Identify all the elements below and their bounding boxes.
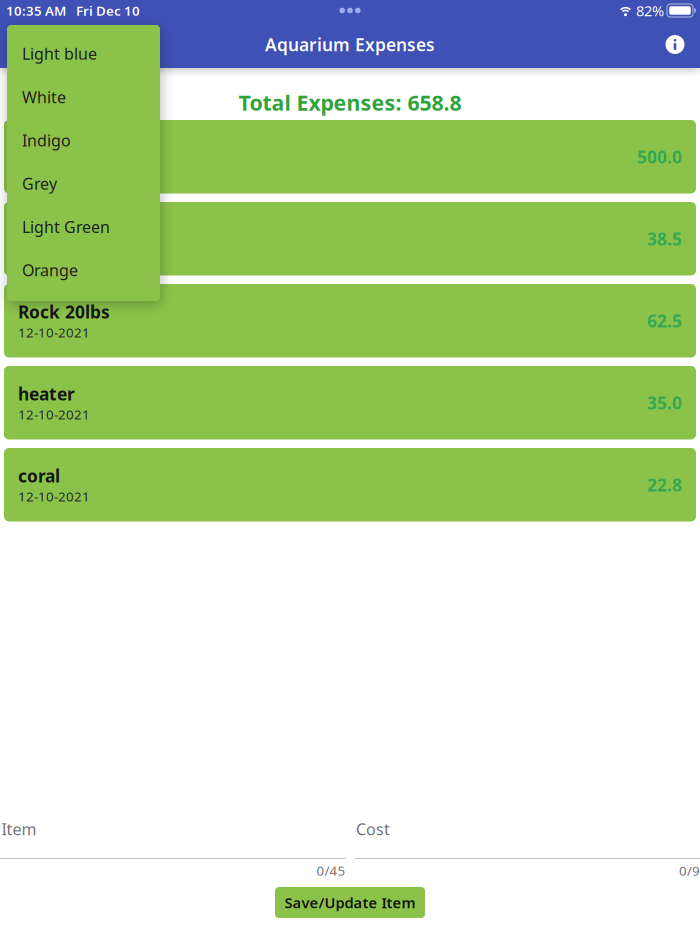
staticText: 22.8 <box>647 473 682 496</box>
button[interactable]: White <box>7 75 160 119</box>
staticText: 82% <box>636 1 664 20</box>
staticText: White <box>22 86 66 107</box>
staticText: Aquarium Expenses <box>265 33 435 56</box>
staticText: Grey <box>22 173 57 194</box>
staticText: 0/45 <box>316 862 345 879</box>
button[interactable]: Indigo <box>7 119 160 162</box>
staticText: 12-10-2021 <box>18 323 90 341</box>
staticText: 10:35 AM <box>6 2 66 19</box>
button[interactable]: Tank 50g <box>4 120 696 193</box>
staticText: Save/Update Item <box>284 893 415 912</box>
button[interactable]: Orange <box>7 248 160 292</box>
staticText: 500.0 <box>637 145 682 168</box>
staticText: Filter <box>18 218 64 241</box>
staticText: Total Expenses: 658.8 <box>238 88 461 117</box>
staticText: Light blue <box>22 43 97 64</box>
staticText: heater <box>18 382 75 405</box>
button[interactable]: heater <box>4 366 696 439</box>
staticText: 12-10-2021 <box>18 487 90 505</box>
staticText: 62.5 <box>647 309 682 332</box>
staticText: Item <box>1 818 36 840</box>
button[interactable]: coral <box>4 448 696 521</box>
button[interactable]: Light blue <box>7 32 160 75</box>
button[interactable]: Filter <box>4 202 696 275</box>
staticText: 38.5 <box>647 227 682 250</box>
staticText: 35.0 <box>647 391 682 414</box>
staticText: 12-10-2021 <box>18 405 90 423</box>
staticText: Indigo <box>22 130 71 151</box>
staticText: Fri Dec 10 <box>76 2 140 19</box>
button[interactable]: Light Green <box>7 205 160 248</box>
staticText: Light Green <box>22 216 110 237</box>
staticText: Orange <box>22 259 78 281</box>
staticText: Tank 50g <box>18 136 95 159</box>
staticText: coral <box>18 464 60 487</box>
staticText: Rock 20lbs <box>18 300 110 323</box>
button[interactable]: Grey <box>7 162 160 205</box>
button[interactable]: Rock 20lbs <box>4 284 696 357</box>
button[interactable]: Save/Update Item <box>275 887 425 918</box>
button[interactable]: Info <box>653 22 697 66</box>
staticText: Cost <box>356 818 390 840</box>
staticText: 0/9 <box>679 862 700 879</box>
